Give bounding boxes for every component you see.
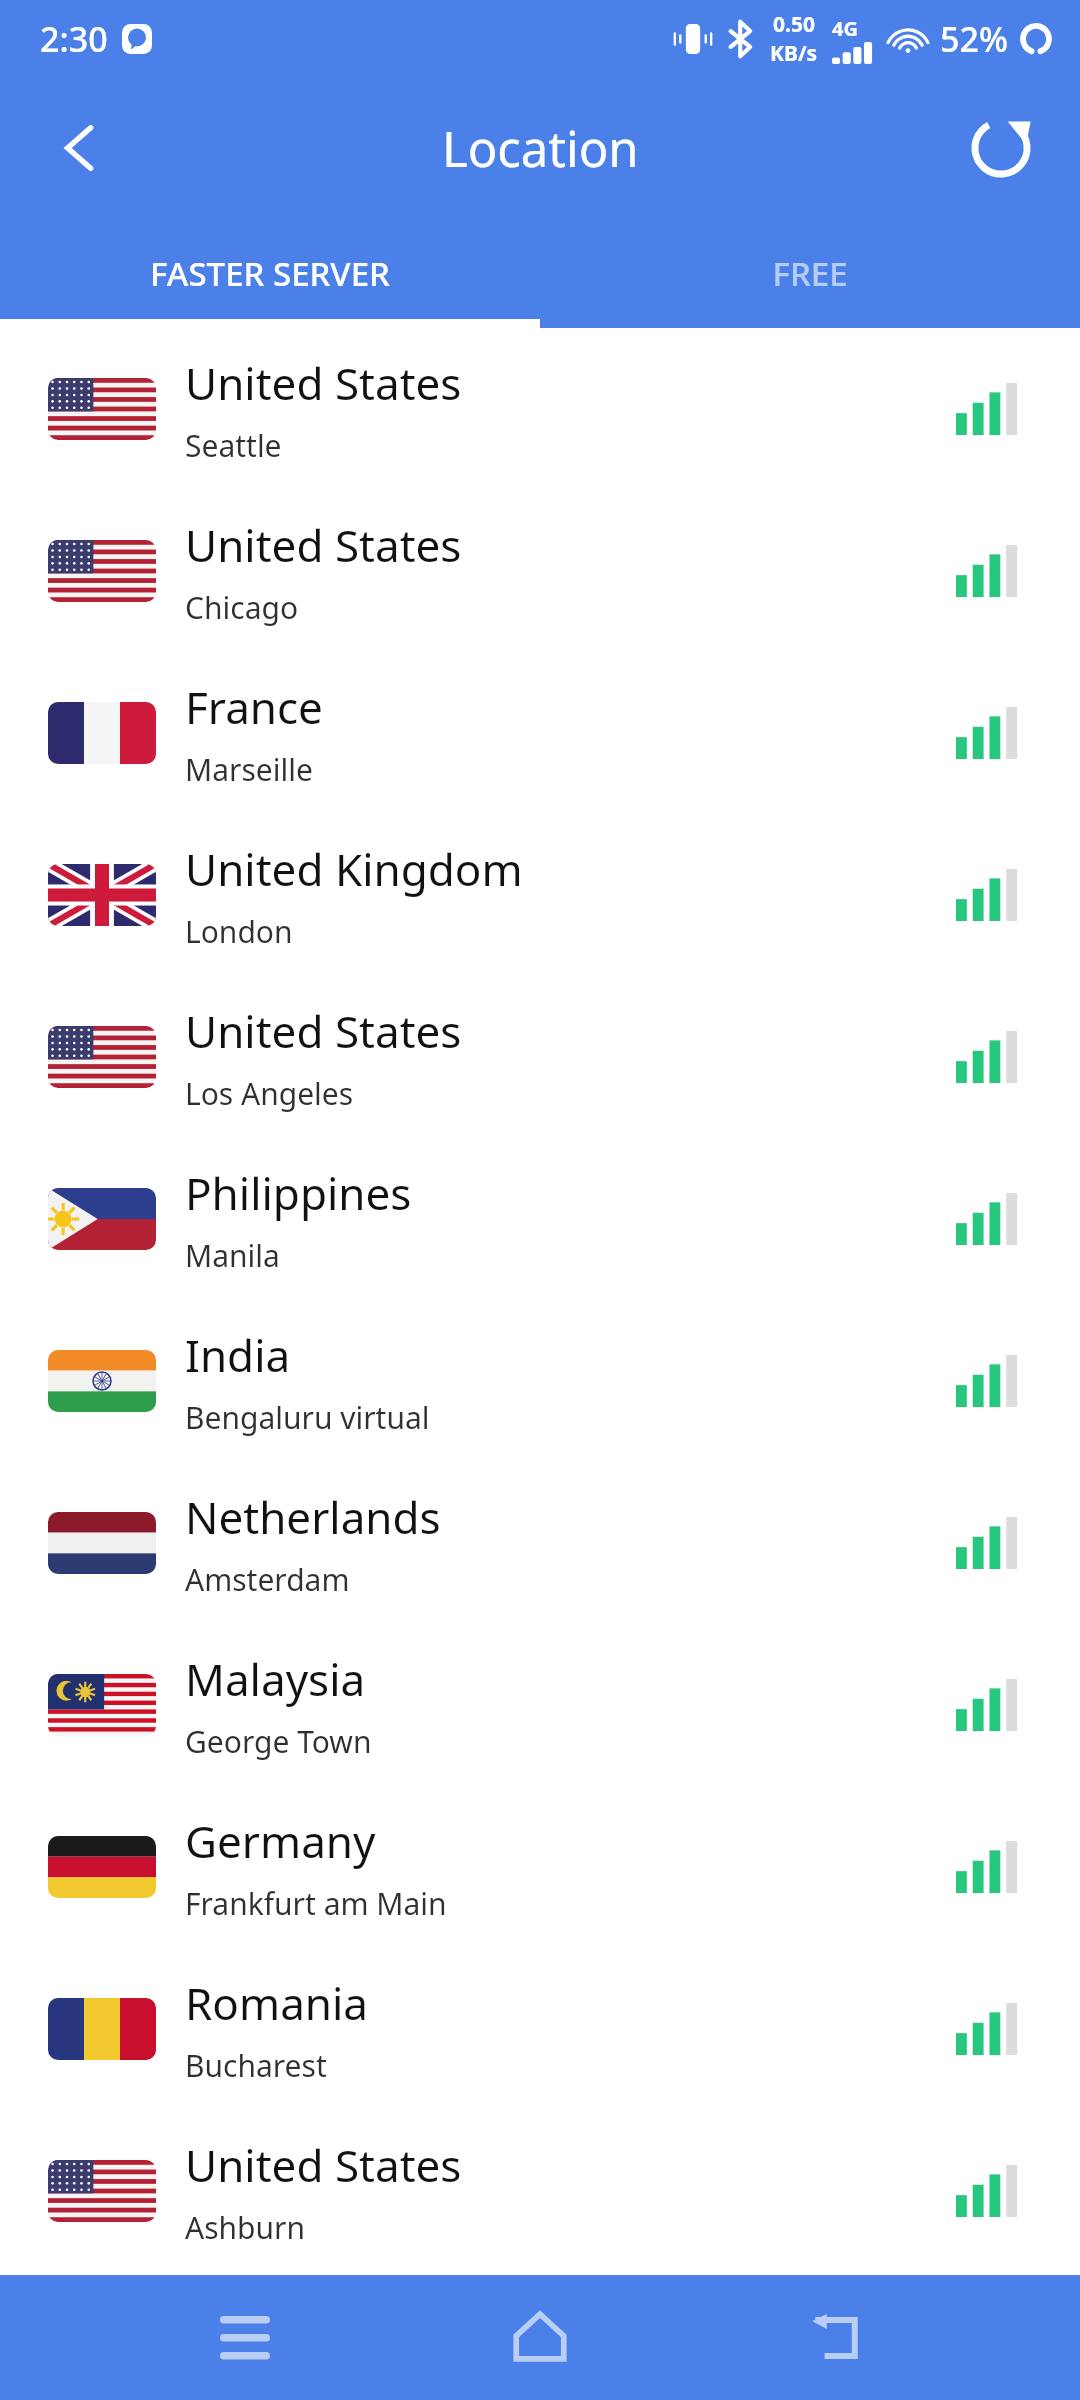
staticText: United States (185, 1001, 462, 1061)
staticText: 4G (832, 15, 858, 42)
button[interactable]: Back (46, 112, 118, 184)
staticText: France (185, 677, 323, 737)
staticText: Location (442, 115, 639, 182)
button[interactable]: Refresh (968, 115, 1034, 181)
staticText: India (185, 1325, 291, 1385)
staticText: FASTER SERVER (150, 251, 390, 296)
staticText: United States (185, 515, 462, 575)
button[interactable]: United States (0, 328, 1080, 490)
button[interactable]: Home (490, 2288, 590, 2388)
button[interactable]: United Kingdom (0, 814, 1080, 976)
button[interactable]: Germany (0, 1786, 1080, 1948)
button[interactable]: United States (0, 2110, 1080, 2272)
button[interactable]: Netherlands (0, 1462, 1080, 1624)
staticText: United States (185, 353, 462, 413)
staticText: Netherlands (185, 1487, 441, 1547)
staticText: Seattle (185, 425, 282, 466)
staticText: 2:30 (40, 16, 108, 62)
button[interactable]: Recent apps (195, 2288, 295, 2388)
staticText: Bucharest (185, 2045, 327, 2086)
staticText: Germany (185, 1811, 376, 1871)
button[interactable]: FREE (540, 218, 1080, 328)
staticText: George Town (185, 1721, 372, 1762)
staticText: Romania (185, 1973, 369, 2033)
button[interactable]: Romania (0, 1948, 1080, 2110)
button[interactable]: United States (0, 490, 1080, 652)
staticText: United Kingdom (185, 839, 523, 899)
staticText: Los Angeles (185, 1073, 354, 1114)
staticText: 0.50 (773, 10, 815, 39)
staticText: 52% (940, 16, 1008, 62)
staticText: Philippines (185, 1163, 412, 1223)
staticText: Ashburn (185, 2207, 305, 2248)
staticText: Frankfurt am Main (185, 1883, 447, 1924)
button[interactable]: France (0, 652, 1080, 814)
staticText: Chicago (185, 587, 299, 628)
staticText: United States (185, 2135, 462, 2195)
staticText: Bengaluru virtual (185, 1397, 430, 1438)
button[interactable]: India (0, 1300, 1080, 1462)
staticText: KB/s (770, 39, 818, 68)
button[interactable]: Back (785, 2288, 885, 2388)
button[interactable]: Malaysia (0, 1624, 1080, 1786)
staticText: London (185, 911, 293, 952)
button[interactable]: FASTER SERVER (0, 218, 540, 328)
staticText: Malaysia (185, 1649, 366, 1709)
button[interactable]: Philippines (0, 1138, 1080, 1300)
staticText: Amsterdam (185, 1559, 350, 1600)
staticText: Manila (185, 1235, 280, 1276)
button[interactable]: United States (0, 976, 1080, 1138)
staticText: FREE (772, 251, 848, 296)
staticText: Marseille (185, 749, 313, 790)
